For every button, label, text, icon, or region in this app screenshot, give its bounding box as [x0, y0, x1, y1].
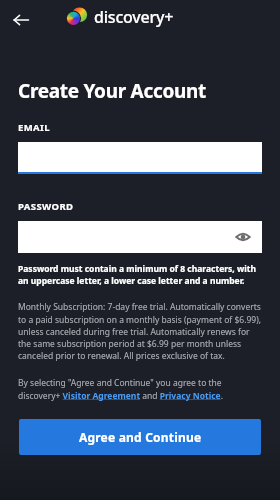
button[interactable]: Back [8, 7, 34, 33]
staticText: PASSWORD [18, 200, 74, 213]
staticText: Agree and Continue [79, 429, 202, 445]
button[interactable]: By selecting "Agree and Continue" you ag… [18, 377, 264, 401]
button[interactable]: Show password [232, 226, 254, 248]
staticText: Monthly Subscription: 7-day free trial. … [18, 301, 264, 361]
button[interactable]: Agree and Continue [19, 419, 261, 455]
button[interactable]: Show password [18, 221, 262, 253]
staticText: discovery+ [94, 6, 174, 28]
staticText: Password must contain a minimum of 8 cha… [18, 263, 266, 287]
staticText: Create Your Account [18, 78, 207, 104]
button[interactable] [18, 142, 262, 174]
staticText: EMAIL [18, 121, 50, 134]
